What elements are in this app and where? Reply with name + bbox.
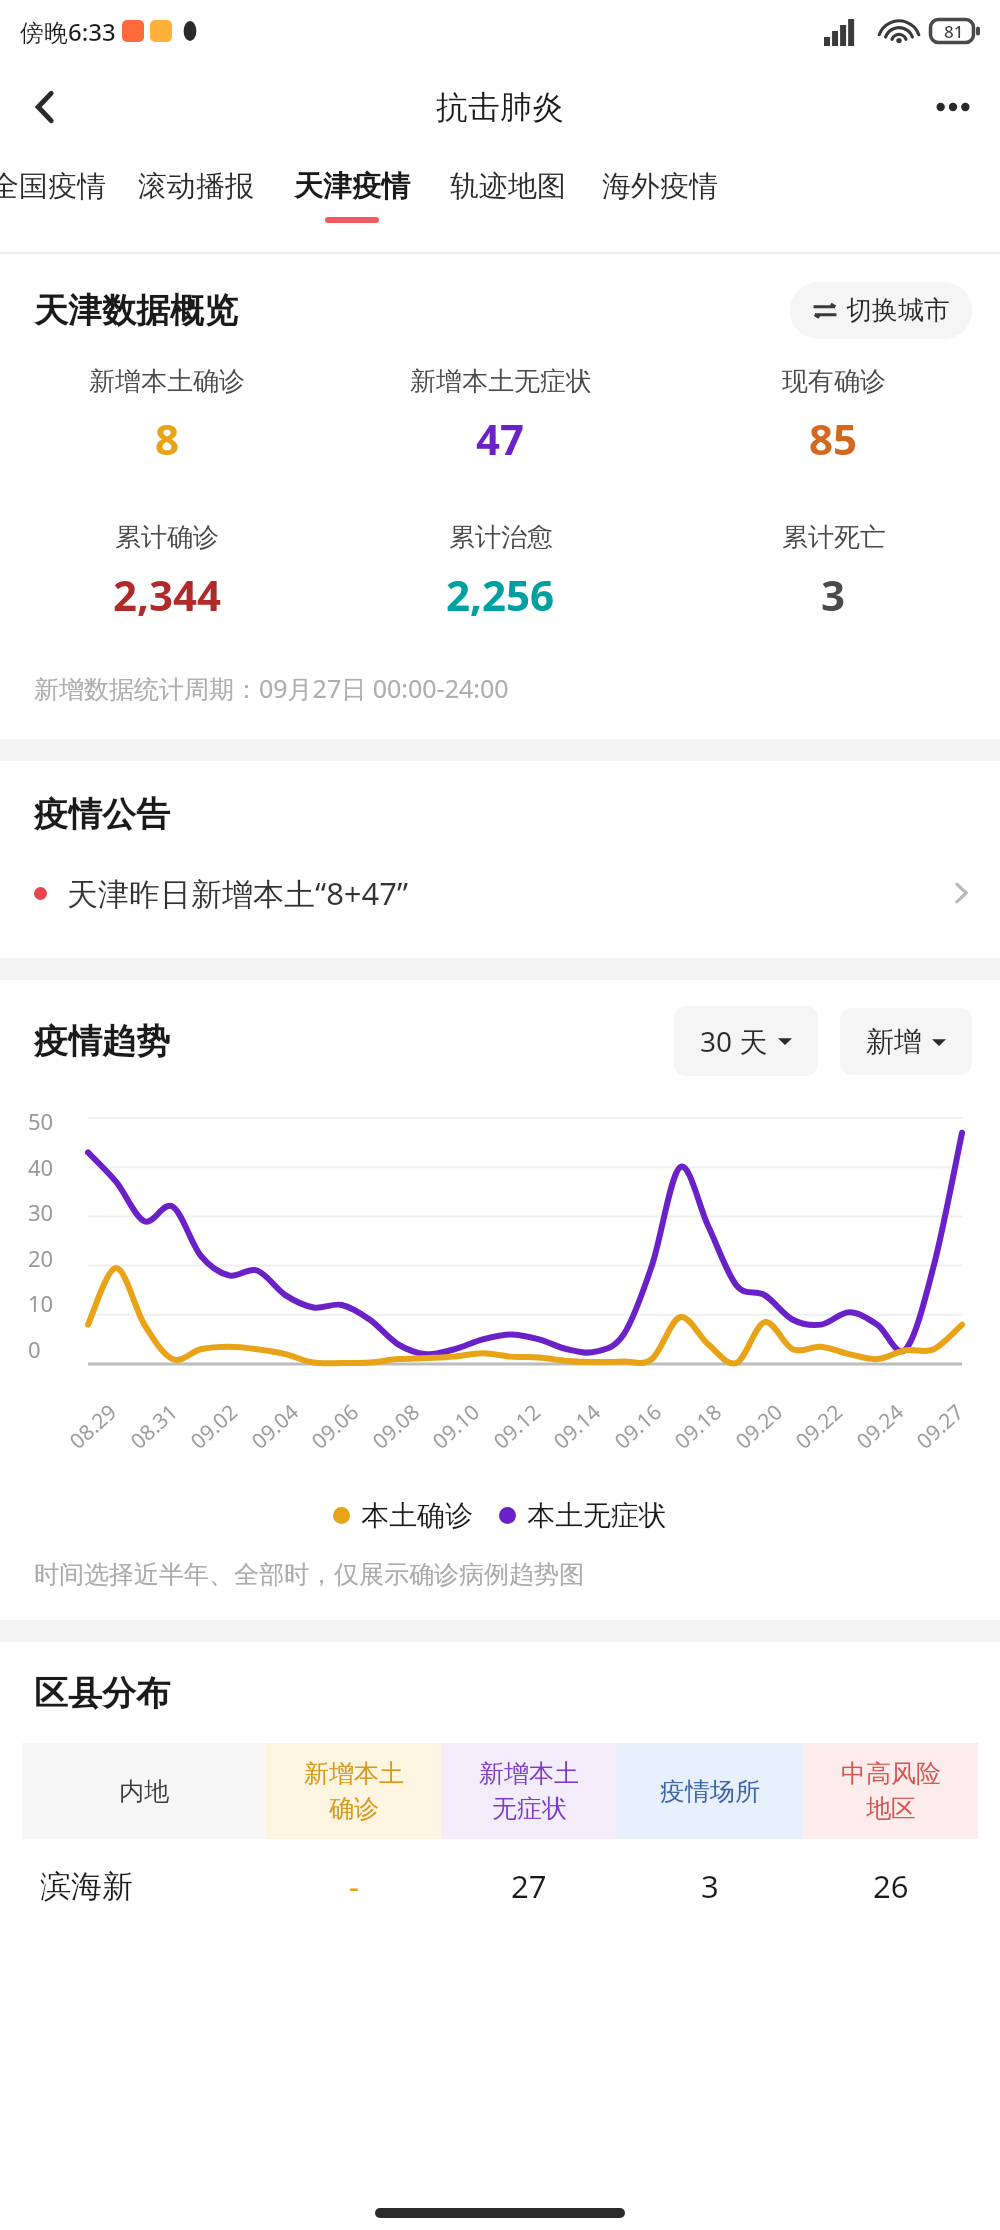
staticText: 09.16 [608, 1398, 668, 1455]
staticText: 天津昨日新增本土“8+47” [67, 872, 409, 914]
staticText: 区县分布 [34, 1672, 170, 1715]
staticText: 85 [809, 410, 858, 467]
button[interactable]: 疫情场所 [616, 1743, 803, 1839]
staticText: 疫情公告 [34, 793, 170, 836]
button[interactable]: 中高风险 [803, 1743, 978, 1839]
staticText: 切换城市 [846, 294, 950, 327]
button[interactable]: 全国疫情 [0, 152, 128, 252]
button[interactable]: 切换城市 [790, 282, 972, 339]
staticText: 新增本土 [304, 1758, 404, 1789]
staticText: 新增数据统计周期：09月27日 00:00-24:00 [34, 671, 509, 705]
staticText: 内地 [119, 1776, 169, 1807]
button[interactable]: 新增 [840, 1008, 972, 1075]
staticText: 20 [28, 1243, 54, 1273]
staticText: 抗击肺炎 [436, 87, 564, 127]
staticText: 无症状 [492, 1793, 567, 1824]
staticText: 26 [873, 1865, 909, 1907]
staticText: 8 [155, 410, 180, 467]
staticText: 天津疫情 [294, 168, 410, 205]
staticText: 08.29 [63, 1398, 123, 1455]
staticText: 新增本土 [479, 1758, 579, 1789]
staticText: 全国疫情 [0, 168, 106, 205]
staticText: 09.20 [729, 1398, 789, 1455]
staticText: 累计确诊 [115, 521, 219, 554]
staticText: 08.31 [124, 1398, 184, 1455]
staticText: 滨海新 [40, 1867, 133, 1906]
staticText: 地区 [866, 1793, 916, 1824]
staticText: 09.18 [668, 1398, 728, 1455]
staticText: 新增本土无症状 [410, 365, 592, 398]
staticText: 新增 [866, 1024, 922, 1059]
button[interactable]: 轨迹地图 [428, 152, 588, 252]
staticText: 傍晚6:33 [20, 15, 116, 48]
staticText: 疫情趋势 [34, 1020, 170, 1063]
staticText: 海外疫情 [602, 168, 718, 205]
staticText: 09.02 [184, 1398, 244, 1455]
button[interactable]: More options [918, 72, 988, 142]
staticText: 09.14 [547, 1398, 607, 1455]
staticText: 确诊 [329, 1793, 379, 1824]
staticText: 天津数据概览 [34, 289, 238, 332]
staticText: 27 [511, 1865, 547, 1907]
staticText: 累计治愈 [449, 521, 553, 554]
button[interactable]: 新增本土 [266, 1743, 441, 1839]
staticText: 09.22 [789, 1398, 849, 1455]
staticText: 09.12 [487, 1398, 547, 1455]
button[interactable]: Back [10, 72, 80, 142]
staticText: 30 天 [700, 1022, 768, 1060]
staticText: 47 [476, 410, 525, 467]
button[interactable]: 天津疫情 [272, 152, 432, 252]
button[interactable]: 30 天 [674, 1006, 818, 1076]
staticText: 3 [701, 1865, 719, 1907]
staticText: 81 [944, 20, 964, 43]
staticText: 本土无症状 [527, 1498, 667, 1533]
staticText: 30 [28, 1197, 54, 1227]
staticText: 2,256 [446, 566, 555, 623]
staticText: 2,344 [113, 566, 222, 623]
staticText: 新增本土确诊 [89, 365, 245, 398]
staticText: 轨迹地图 [450, 168, 566, 205]
staticText: 10 [28, 1288, 54, 1318]
button[interactable]: 天津昨日新增本土“8+47” [0, 866, 1000, 920]
staticText: 时间选择近半年、全部时，仅展示确诊病例趋势图 [34, 1559, 584, 1590]
staticText: 09.10 [426, 1398, 486, 1455]
staticText: 累计死亡 [782, 521, 886, 554]
staticText: 滚动播报 [138, 168, 254, 205]
staticText: 09.04 [245, 1398, 305, 1455]
button[interactable]: 海外疫情 [580, 152, 740, 252]
staticText: 09.27 [910, 1398, 970, 1455]
staticText: - [349, 1865, 359, 1907]
staticText: 09.06 [305, 1398, 365, 1455]
staticText: 09.08 [366, 1398, 426, 1455]
staticText: 疫情场所 [660, 1776, 760, 1807]
staticText: 0 [28, 1334, 41, 1364]
staticText: 3 [821, 566, 846, 623]
button[interactable]: 滚动播报 [116, 152, 276, 252]
staticText: 50 [28, 1106, 54, 1136]
button[interactable]: 新增本土 [441, 1743, 616, 1839]
staticText: 本土确诊 [361, 1498, 473, 1533]
button[interactable]: 内地 [22, 1743, 266, 1839]
staticText: 现有确诊 [782, 365, 886, 398]
staticText: 中高风险 [841, 1758, 941, 1789]
staticText: 09.24 [850, 1398, 910, 1455]
staticText: 40 [28, 1152, 54, 1182]
